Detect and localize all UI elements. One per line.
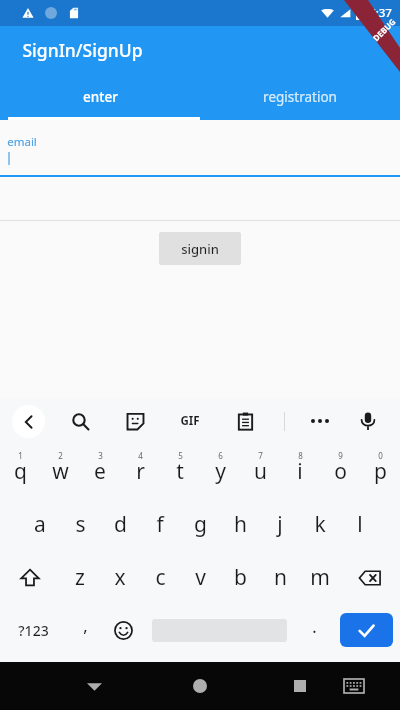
button[interactable]: enter <box>0 73 200 120</box>
button[interactable]: n <box>260 551 300 604</box>
staticText: , <box>83 615 88 637</box>
staticText: h <box>234 510 247 539</box>
staticText: j <box>277 510 283 539</box>
staticText: ?123 <box>18 621 49 640</box>
button[interactable]: 8 <box>280 443 320 498</box>
button[interactable]: s <box>60 498 100 551</box>
button[interactable]: 9 <box>320 443 360 498</box>
button[interactable]: 3 <box>80 443 120 498</box>
button[interactable]: m <box>300 551 340 604</box>
staticText: k <box>314 510 326 539</box>
staticText: u <box>254 457 267 486</box>
staticText: 2 <box>58 450 63 461</box>
button[interactable]: b <box>220 551 260 604</box>
button[interactable]: a <box>20 498 60 551</box>
button[interactable]: 1 <box>0 443 40 498</box>
button[interactable]: z <box>60 551 100 604</box>
staticText: o <box>334 457 347 486</box>
staticText: s <box>75 510 86 539</box>
staticText: . <box>312 616 317 638</box>
staticText: registration <box>263 88 337 106</box>
button[interactable]: More options <box>300 401 340 441</box>
button[interactable]: . <box>296 604 332 656</box>
button[interactable]: c <box>140 551 180 604</box>
staticText: l <box>357 510 363 539</box>
staticText: SignIn/SignUp <box>22 38 143 62</box>
button[interactable]: 2 <box>40 443 80 498</box>
staticText: b <box>234 563 247 592</box>
staticText: 6 <box>218 450 223 461</box>
staticText: c <box>155 563 166 592</box>
button[interactable]: d <box>100 498 140 551</box>
staticText: y <box>215 457 226 486</box>
button[interactable]: 4 <box>120 443 160 498</box>
staticText: q <box>14 457 27 486</box>
button[interactable]: Recents <box>278 664 322 708</box>
button[interactable]: Emoji <box>103 604 143 656</box>
staticText: 3 <box>98 450 103 461</box>
staticText: m <box>310 563 330 592</box>
button[interactable]: ?123 <box>0 604 67 656</box>
button[interactable]: l <box>340 498 380 551</box>
staticText: d <box>114 510 127 539</box>
button[interactable]: registration <box>200 73 400 120</box>
staticText: t <box>176 457 184 486</box>
button[interactable]: Shift <box>0 551 60 604</box>
staticText: 9 <box>338 450 343 461</box>
staticText: z <box>75 563 85 592</box>
staticText: 0 <box>378 450 383 461</box>
staticText: i <box>297 457 303 486</box>
staticText: w <box>52 457 69 486</box>
button[interactable]: f <box>140 498 180 551</box>
staticText: v <box>195 563 206 592</box>
staticText: 5 <box>178 450 183 461</box>
button[interactable]: 7 <box>240 443 280 498</box>
staticText: 7 <box>258 450 263 461</box>
button[interactable]: Home <box>178 664 222 708</box>
staticText: a <box>34 510 46 539</box>
staticText: p <box>374 457 387 486</box>
button[interactable]: signin <box>159 232 241 265</box>
staticText: email <box>7 134 37 150</box>
button[interactable]: 0 <box>360 443 400 498</box>
staticText: r <box>136 457 145 486</box>
button[interactable]: GIF <box>168 399 212 443</box>
button[interactable]: h <box>220 498 260 551</box>
button[interactable]: , <box>67 604 103 656</box>
button[interactable]: Stickers <box>113 399 157 443</box>
staticText: 4 <box>138 450 143 461</box>
staticText: GIF <box>180 413 200 429</box>
staticText: 1 <box>18 450 23 461</box>
button[interactable]: Space <box>143 604 296 656</box>
button[interactable]: Clipboard <box>223 399 267 443</box>
button[interactable]: 5 <box>160 443 200 498</box>
staticText: g <box>194 510 207 539</box>
button[interactable]: Enter <box>340 613 393 647</box>
button[interactable]: Back <box>72 664 116 708</box>
button[interactable]: Switch keyboard <box>336 668 372 704</box>
button[interactable]: g <box>180 498 220 551</box>
button[interactable]: 6 <box>200 443 240 498</box>
staticText: DEBUG <box>370 16 398 43</box>
button[interactable]: j <box>260 498 300 551</box>
button[interactable]: x <box>100 551 140 604</box>
button[interactable]: v <box>180 551 220 604</box>
button[interactable]: Back <box>12 405 45 438</box>
staticText: 7:37 <box>369 5 392 21</box>
button[interactable]: Search <box>58 399 102 443</box>
staticText: n <box>274 563 287 592</box>
staticText: 8 <box>298 450 303 461</box>
staticText: enter <box>83 88 118 106</box>
staticText: e <box>94 457 106 486</box>
button[interactable]: email <box>0 120 400 177</box>
button[interactable]: Voice input <box>348 401 388 441</box>
button[interactable] <box>0 177 400 221</box>
staticText: f <box>156 510 164 539</box>
button[interactable]: Backspace <box>340 551 400 604</box>
staticText: signin <box>181 240 219 258</box>
staticText: x <box>114 563 126 592</box>
button[interactable]: k <box>300 498 340 551</box>
